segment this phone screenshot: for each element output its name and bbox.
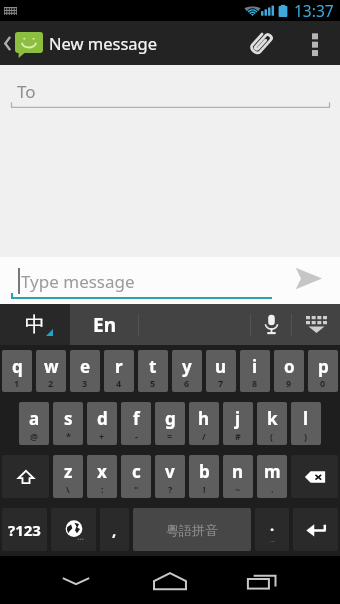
staticText: 中 bbox=[25, 312, 45, 337]
button[interactable]: h bbox=[189, 402, 219, 445]
button[interactable]: Attach bbox=[232, 21, 290, 65]
staticText: 13:37 bbox=[294, 0, 334, 21]
button[interactable]: c bbox=[121, 455, 151, 498]
staticText: r bbox=[115, 355, 123, 378]
staticText: ~ bbox=[235, 483, 241, 495]
staticText: \ bbox=[66, 483, 70, 495]
button[interactable]: z bbox=[53, 455, 83, 498]
staticText: w bbox=[44, 355, 59, 378]
staticText: a bbox=[29, 407, 40, 430]
button[interactable]: x bbox=[87, 455, 117, 498]
button[interactable]: s bbox=[53, 402, 83, 445]
button[interactable]: Backspace bbox=[291, 455, 338, 498]
button[interactable]: Recent apps bbox=[234, 556, 290, 604]
button[interactable]: 粵語拼音 bbox=[133, 508, 251, 551]
staticText: 7 bbox=[218, 377, 224, 389]
staticText: u bbox=[215, 355, 227, 378]
staticText: : bbox=[101, 483, 104, 495]
button[interactable]: e bbox=[70, 350, 100, 392]
staticText: 6 bbox=[184, 377, 190, 389]
button[interactable]: q bbox=[2, 350, 32, 392]
staticText: * bbox=[66, 430, 71, 442]
staticText: 1 bbox=[14, 377, 20, 389]
button[interactable]: Shift bbox=[2, 455, 49, 498]
staticText: ) bbox=[304, 430, 308, 442]
staticText: n bbox=[232, 460, 244, 483]
staticText: b bbox=[199, 460, 210, 483]
button[interactable]: p bbox=[308, 350, 338, 392]
button[interactable]: Hide keyboard bbox=[292, 304, 340, 345]
staticText: i bbox=[252, 355, 258, 378]
button[interactable]: i bbox=[240, 350, 270, 392]
button[interactable]: f bbox=[121, 402, 151, 445]
button[interactable]: l bbox=[291, 402, 321, 445]
staticText: ··· bbox=[270, 537, 275, 545]
staticText: j bbox=[235, 407, 241, 430]
button[interactable]: d bbox=[87, 402, 117, 445]
button[interactable]: . bbox=[255, 508, 289, 551]
button[interactable]: , bbox=[100, 508, 129, 551]
staticText: En bbox=[93, 312, 116, 338]
button[interactable]: j bbox=[223, 402, 253, 445]
staticText: 2 bbox=[48, 377, 54, 389]
staticText: # bbox=[235, 430, 241, 442]
button[interactable]: Enter bbox=[293, 508, 338, 551]
staticText: q bbox=[12, 355, 23, 378]
button[interactable]: t bbox=[138, 350, 168, 392]
staticText: 8 bbox=[252, 377, 258, 389]
staticText: ! bbox=[203, 483, 206, 495]
button[interactable]: 中 bbox=[0, 304, 70, 345]
button[interactable]: b bbox=[189, 455, 219, 498]
staticText: - bbox=[135, 430, 138, 442]
staticText: = bbox=[167, 430, 173, 442]
staticText: h bbox=[198, 407, 210, 430]
staticText: f bbox=[133, 407, 140, 430]
staticText: / bbox=[202, 430, 206, 442]
button[interactable]: w bbox=[36, 350, 66, 392]
staticText: e bbox=[80, 355, 91, 378]
staticText: x bbox=[97, 460, 107, 483]
button[interactable]: ?123 bbox=[2, 508, 47, 551]
staticText: ( bbox=[270, 430, 274, 442]
staticText: 0 bbox=[320, 377, 326, 389]
button[interactable]: Voice input bbox=[251, 304, 291, 345]
staticText: g bbox=[165, 407, 176, 430]
button[interactable]: k bbox=[257, 402, 287, 445]
staticText: + bbox=[99, 430, 105, 442]
button[interactable]: En bbox=[70, 304, 138, 345]
staticText: 9 bbox=[286, 377, 292, 389]
button[interactable]: u bbox=[206, 350, 236, 392]
staticText: y bbox=[182, 355, 192, 378]
button[interactable]: Home bbox=[142, 556, 198, 604]
staticText: ? bbox=[168, 483, 173, 495]
staticText: z bbox=[64, 460, 73, 483]
staticText: d bbox=[97, 407, 108, 430]
button[interactable]: g bbox=[155, 402, 185, 445]
staticText: s bbox=[64, 407, 73, 430]
staticText: . bbox=[271, 483, 274, 495]
button[interactable]: Send bbox=[276, 257, 340, 304]
other: Navigate up bbox=[4, 36, 11, 51]
staticText: 3 bbox=[82, 377, 88, 389]
button[interactable]: Navigate up bbox=[0, 21, 158, 65]
staticText: 粵語拼音 bbox=[166, 522, 218, 538]
staticText: c bbox=[132, 460, 141, 483]
button[interactable]: n bbox=[223, 455, 253, 498]
button[interactable]: Hide keyboard bbox=[48, 556, 104, 604]
button[interactable]: Change language bbox=[51, 508, 96, 551]
staticText: m bbox=[264, 460, 281, 483]
staticText: New message bbox=[49, 32, 158, 54]
button[interactable]: o bbox=[274, 350, 304, 392]
staticText: 5 bbox=[150, 377, 156, 389]
button[interactable]: m bbox=[257, 455, 287, 498]
button[interactable]: More options bbox=[290, 21, 340, 65]
button[interactable]: r bbox=[104, 350, 134, 392]
button[interactable]: a bbox=[19, 402, 49, 445]
staticText: ?123 bbox=[8, 520, 41, 540]
staticText: l bbox=[303, 407, 309, 430]
button[interactable]: y bbox=[172, 350, 202, 392]
staticText: o bbox=[284, 355, 295, 378]
staticText: , bbox=[112, 520, 117, 540]
staticText: k bbox=[267, 407, 278, 430]
button[interactable]: v bbox=[155, 455, 185, 498]
